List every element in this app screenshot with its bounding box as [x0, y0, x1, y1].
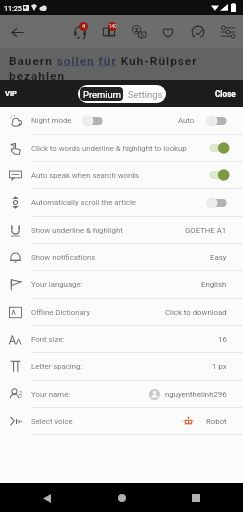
staticText: Robot: [206, 417, 227, 426]
button[interactable]: Show underline & highlight: [0, 217, 243, 244]
staticText: 16: [218, 335, 227, 344]
button[interactable]: Auto speak when search words: [0, 162, 243, 189]
button[interactable]: Show notifications: [0, 244, 243, 271]
button[interactable]: Translate: [126, 15, 152, 48]
button[interactable]: Night mode: [0, 107, 243, 135]
staticText: Night mode: [31, 116, 72, 125]
staticText: 1 px: [212, 362, 227, 371]
staticText: Click to download: [165, 308, 227, 317]
button[interactable]: Home: [111, 487, 133, 509]
button[interactable]: Recent apps: [185, 487, 207, 509]
staticText: Font size:: [31, 335, 218, 344]
button[interactable]: Font size:: [0, 326, 243, 353]
staticText: Easy: [210, 253, 227, 262]
button[interactable]: [209, 196, 227, 210]
staticText: Show underline & highlight: [31, 226, 185, 235]
button[interactable]: Select voice: [0, 408, 243, 435]
button[interactable]: Offline Dictionary: [0, 299, 243, 326]
button[interactable]: VIP: [5, 89, 17, 98]
button[interactable]: [209, 114, 227, 128]
staticText: GOETHE A1: [185, 226, 227, 235]
staticText: Offline Dictionary: [31, 308, 165, 317]
button[interactable]: [209, 168, 227, 182]
staticText: Your name:: [31, 390, 149, 399]
button[interactable]: Favorites: [155, 15, 181, 48]
button[interactable]: Settings: [215, 15, 241, 48]
staticText: Premium: [83, 89, 121, 100]
staticText: 4: [82, 23, 86, 30]
button[interactable]: Reading speed: [185, 15, 211, 48]
button[interactable]: Premium: [80, 87, 123, 101]
button[interactable]: Back: [6, 21, 28, 43]
button[interactable]: Close: [215, 89, 236, 99]
staticText: Settings: [128, 89, 163, 100]
button[interactable]: Settings: [125, 85, 166, 103]
staticText: Show notifications: [31, 253, 210, 262]
staticText: Your language:: [31, 280, 201, 289]
staticText: Bauern sollen für Kuh-Rülpser bezahlen: [9, 54, 229, 80]
button[interactable]: Dictionary: [96, 15, 122, 48]
button[interactable]: [85, 114, 103, 128]
staticText: nguyenthelinh296: [165, 390, 227, 399]
button[interactable]: Click to words underline & highlight to …: [0, 135, 243, 162]
staticText: Auto speak when search words: [31, 171, 209, 180]
button[interactable]: Letter spacing:: [0, 353, 243, 381]
staticText: English: [201, 280, 227, 289]
staticText: Auto: [178, 116, 195, 125]
staticText: Automatically scroll the article: [31, 198, 209, 207]
button[interactable]: Back: [36, 487, 58, 509]
staticText: 11:25: [4, 4, 22, 12]
button[interactable]: Automatically scroll the article: [0, 189, 243, 217]
staticText: 140: [109, 24, 117, 29]
button[interactable]: Your name:: [0, 381, 243, 408]
button[interactable]: [209, 141, 227, 155]
staticText: Select voice: [31, 417, 183, 426]
button[interactable]: Headphones: [67, 15, 93, 48]
staticText: Letter spacing:: [31, 362, 212, 371]
staticText: Click to words underline & highlight to …: [31, 144, 209, 153]
button[interactable]: Your language:: [0, 271, 243, 299]
